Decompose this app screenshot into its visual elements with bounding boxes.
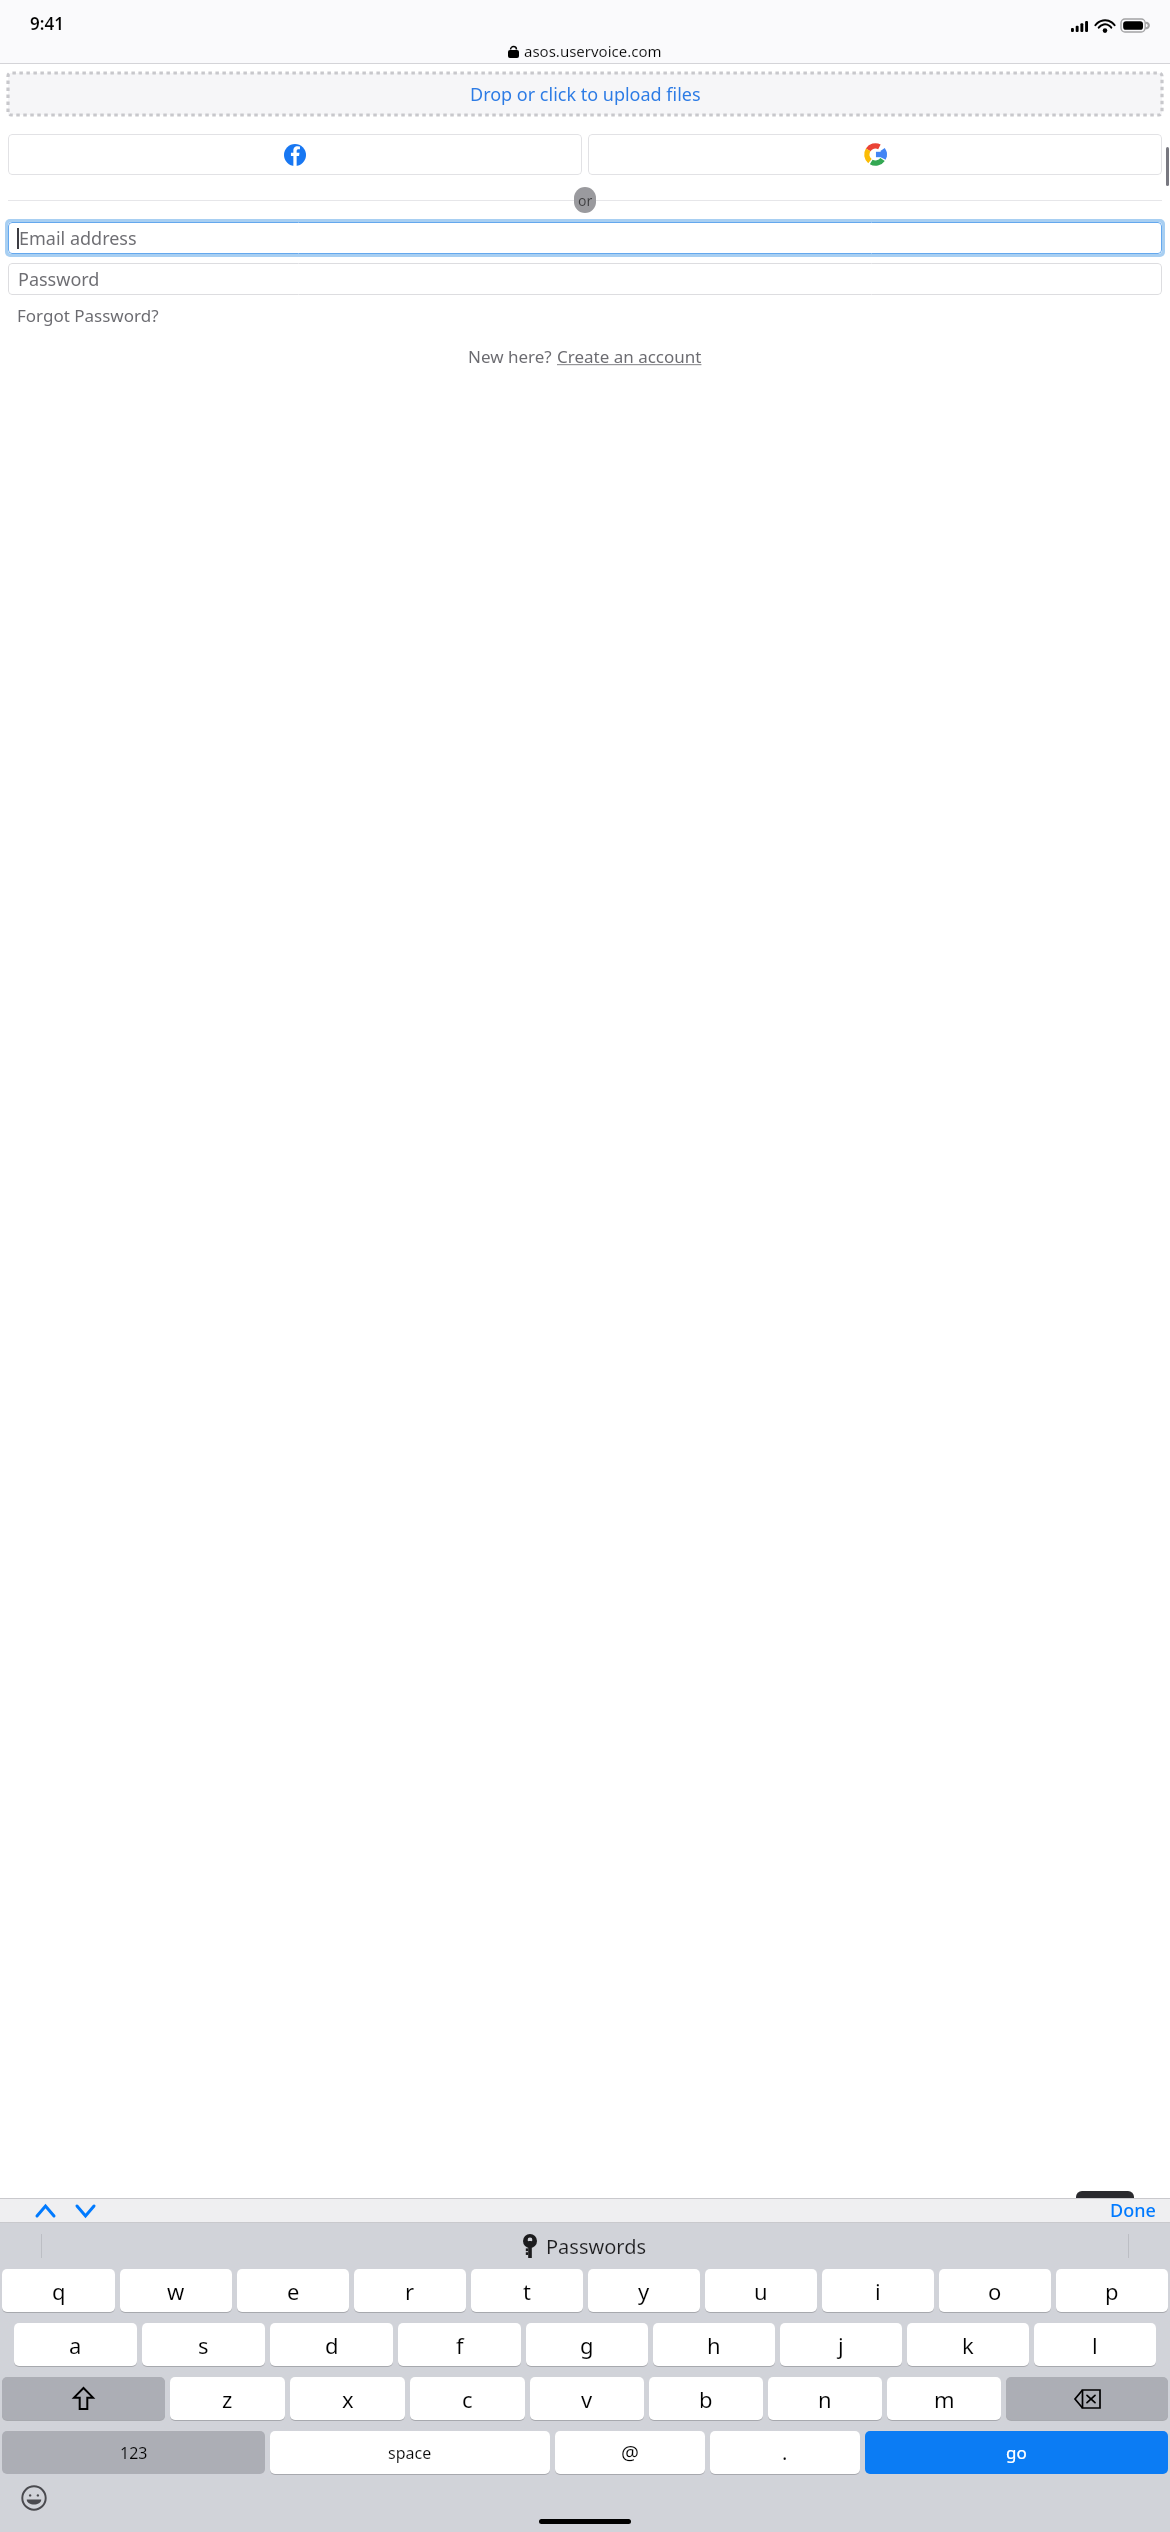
button[interactable]: d	[270, 2323, 393, 2366]
staticText: 9:41	[30, 12, 64, 35]
staticText: Drop or click to upload files	[470, 82, 701, 107]
staticText: a	[69, 2330, 82, 2360]
staticText: e	[287, 2276, 300, 2306]
button[interactable]: asos.uservoice.com	[508, 41, 662, 61]
button[interactable]: 123	[2, 2431, 265, 2474]
button[interactable]: b	[649, 2377, 763, 2420]
staticText: Passwords	[546, 2233, 647, 2260]
staticText: z	[222, 2384, 233, 2414]
staticText: m	[934, 2384, 955, 2414]
staticText: b	[699, 2384, 713, 2414]
staticText: go	[1006, 2441, 1027, 2464]
staticText: Password	[18, 267, 100, 292]
button[interactable]: Emoji	[16, 2480, 52, 2516]
button[interactable]: Password	[8, 263, 1162, 295]
staticText: @	[621, 2439, 639, 2466]
button[interactable]: g	[526, 2323, 648, 2366]
staticText: x	[342, 2384, 354, 2414]
staticText: f	[456, 2330, 464, 2360]
button[interactable]: Create an account	[557, 345, 702, 368]
button[interactable]: e	[237, 2269, 349, 2312]
button[interactable]: j	[780, 2323, 902, 2366]
button[interactable]: u	[705, 2269, 817, 2312]
button[interactable]: q	[2, 2269, 115, 2312]
staticText: l	[1092, 2330, 1098, 2360]
button[interactable]: s	[142, 2323, 265, 2366]
button[interactable]: @	[555, 2431, 705, 2474]
button[interactable]: k	[907, 2323, 1029, 2366]
button[interactable]: Previous field	[25, 2198, 65, 2223]
staticText: Done	[1110, 2198, 1156, 2223]
button[interactable]: a	[14, 2323, 137, 2366]
staticText: n	[818, 2384, 832, 2414]
button[interactable]: h	[653, 2323, 775, 2366]
staticText: i	[875, 2276, 881, 2306]
staticText: k	[962, 2330, 974, 2360]
button[interactable]: f	[398, 2323, 521, 2366]
staticText: .	[782, 2439, 788, 2466]
button[interactable]: w	[120, 2269, 232, 2312]
button[interactable]: Forgot Password?	[17, 304, 159, 327]
button[interactable]: o	[939, 2269, 1051, 2312]
button[interactable]: Shift	[2, 2377, 165, 2420]
button[interactable]: n	[768, 2377, 882, 2420]
button[interactable]: t	[471, 2269, 583, 2312]
staticText: space	[388, 2442, 432, 2464]
button[interactable]: c	[410, 2377, 525, 2420]
button[interactable]: i	[822, 2269, 934, 2312]
staticText: y	[638, 2276, 650, 2306]
staticText: 123	[120, 2442, 148, 2464]
button[interactable]: Done	[1110, 2198, 1156, 2223]
button[interactable]: .	[710, 2431, 860, 2474]
button[interactable]: z	[170, 2377, 285, 2420]
button[interactable]: Email address	[8, 222, 1162, 254]
button[interactable]: Passwords	[0, 2223, 1170, 2269]
button[interactable]: p	[1056, 2269, 1168, 2312]
staticText: t	[523, 2276, 531, 2306]
staticText: q	[52, 2276, 66, 2306]
button[interactable]: Next field	[65, 2198, 105, 2223]
staticText: v	[581, 2384, 593, 2414]
button[interactable]: v	[530, 2377, 644, 2420]
staticText: asos.uservoice.com	[524, 41, 662, 61]
button[interactable]: y	[588, 2269, 700, 2312]
staticText: r	[405, 2276, 415, 2306]
other: Sign in with Facebook	[284, 144, 306, 166]
staticText: c	[462, 2384, 473, 2414]
button[interactable]: Drop or click to upload files	[8, 73, 1162, 115]
staticText: Email address	[19, 226, 137, 251]
staticText: j	[838, 2330, 844, 2360]
button[interactable]: x	[290, 2377, 405, 2420]
button[interactable]: Sign in with Google	[588, 134, 1162, 175]
staticText: g	[580, 2330, 594, 2360]
button[interactable]: m	[887, 2377, 1001, 2420]
button[interactable]: go	[865, 2431, 1168, 2474]
staticText: h	[707, 2330, 721, 2360]
button[interactable]: Sign in with Facebook	[8, 134, 582, 175]
staticText: s	[198, 2330, 209, 2360]
staticText: p	[1105, 2276, 1119, 2306]
staticText: or	[578, 191, 593, 210]
staticText: w	[167, 2276, 185, 2306]
staticText: New here?	[468, 345, 557, 368]
button[interactable]: space	[270, 2431, 550, 2474]
staticText: d	[325, 2330, 339, 2360]
staticText: o	[988, 2276, 1002, 2306]
button[interactable]: r	[354, 2269, 466, 2312]
staticText: u	[754, 2276, 768, 2306]
button[interactable]: Backspace	[1006, 2377, 1168, 2420]
other: Sign in with Google	[864, 143, 887, 166]
button[interactable]: l	[1034, 2323, 1156, 2366]
